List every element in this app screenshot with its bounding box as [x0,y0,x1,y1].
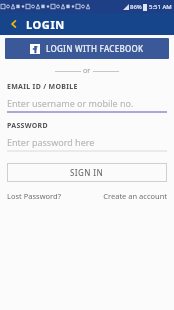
button[interactable]: LOGIN WITH FACEBOOK [5,38,169,59]
staticText: SIGN IN [70,167,104,178]
staticText: Create an account [103,191,167,201]
staticText: or [83,66,91,76]
staticText: 5:51 AM [149,3,172,11]
button[interactable]: Lost Password? [7,191,61,201]
button[interactable]: SIGN IN [7,163,167,182]
staticText: Enter username or mobile no. [7,97,134,109]
staticText: EMAIL ID / MOBILE [7,82,78,92]
button[interactable]: Enter username or mobile no. [7,97,167,113]
staticText: Lost Password? [7,191,61,201]
staticText: Enter password here [7,136,95,148]
staticText: LOGIN [26,17,65,32]
button[interactable]: Back [6,16,22,32]
staticText: LOGIN WITH FACEBOOK [46,43,144,54]
button[interactable]: Create an account [103,191,167,201]
staticText: PASSWORD [7,121,48,131]
button[interactable]: Enter password here [7,136,167,152]
staticText: 86% [130,3,142,11]
